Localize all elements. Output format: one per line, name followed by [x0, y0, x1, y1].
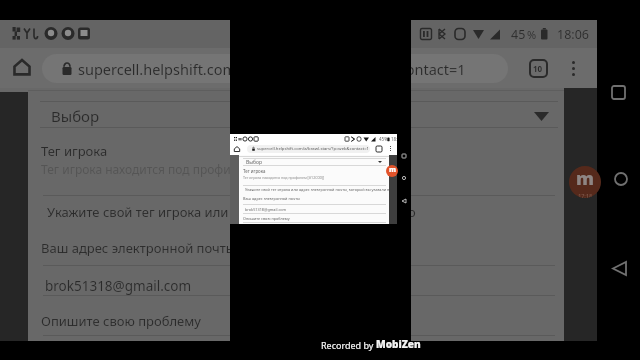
- staticText: Выбор: [51, 106, 100, 126]
- staticText: Тег игрока находится под профилем игрока…: [41, 161, 389, 177]
- button[interactable]: Tabs: [525, 55, 551, 81]
- button[interactable]: Home: [231, 143, 242, 154]
- button[interactable]: Home: [7, 52, 37, 82]
- staticText: Укажите свой тег игрока или адрес электр…: [47, 203, 416, 221]
- staticText: Опишите свою проблему: [41, 312, 201, 330]
- staticText: brok51318@gmail.com: [245, 207, 287, 212]
- button[interactable]: Mobizen recorder: [569, 166, 601, 198]
- button[interactable]: More options: [385, 143, 396, 154]
- staticText: Тег игрока: [41, 142, 108, 160]
- staticText: Выбор: [246, 159, 263, 166]
- staticText: 18:06: [391, 136, 397, 142]
- staticText: 45: [511, 26, 526, 43]
- staticText: MobiZen: [376, 337, 421, 351]
- staticText: Ваш адрес электронной почты: [243, 196, 300, 201]
- staticText: Тег игрока: [243, 168, 266, 174]
- button[interactable]: Recents: [397, 149, 410, 162]
- button[interactable]: Tabs: [373, 143, 384, 154]
- staticText: brok51318@gmail.com: [45, 277, 192, 295]
- staticText: Ваш адрес электронной почты: [41, 239, 236, 257]
- staticText: Recorded by: [321, 339, 376, 351]
- staticText: Тег игрока находится под профилем [#12C0…: [243, 175, 325, 180]
- button[interactable]: More options: [560, 55, 586, 81]
- button[interactable]: Back: [397, 194, 410, 207]
- staticText: Укажите свой тег игрока или адрес электр…: [245, 187, 389, 192]
- staticText: 45%: [379, 136, 388, 142]
- staticText: m: [389, 165, 396, 175]
- button[interactable]: Mobizen recorder: [386, 165, 398, 177]
- staticText: m: [576, 166, 594, 191]
- staticText: 18:06: [557, 26, 589, 43]
- button[interactable]: Recents: [606, 80, 631, 105]
- button[interactable]: Home: [397, 171, 410, 184]
- staticText: Опишите свою проблему: [243, 216, 290, 221]
- staticText: 17:18: [578, 192, 593, 198]
- button[interactable]: Home: [608, 166, 633, 191]
- button[interactable]: Back: [607, 256, 632, 281]
- staticText: 10: [533, 63, 543, 74]
- staticText: supercell.helpshift.com/a/brawl-stars/?p…: [78, 59, 466, 79]
- button[interactable]: supercell.helpshift.com/a/brawl-stars/?p…: [247, 145, 370, 153]
- staticText: 17:18: [389, 175, 396, 177]
- staticText: %: [527, 27, 537, 42]
- staticText: supercell.helpshift.com/a/brawl-stars/?p…: [257, 146, 369, 152]
- button[interactable]: supercell.helpshift.com/a/brawl-stars/?p…: [42, 54, 508, 83]
